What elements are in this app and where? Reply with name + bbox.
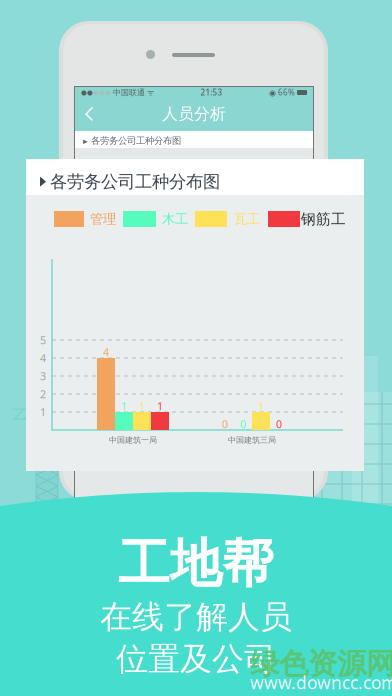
staticText: 中国建筑一局: [109, 435, 157, 445]
staticText: 中国建筑三局: [228, 435, 276, 445]
staticText: 0: [276, 417, 282, 431]
staticText: 1: [258, 399, 264, 413]
staticText: 钢筋工: [301, 210, 346, 228]
staticText: 4: [103, 345, 109, 359]
staticText: 位置及公司: [116, 639, 276, 679]
staticText: 3: [40, 369, 46, 383]
staticText: 0: [240, 417, 246, 431]
staticText: 1: [121, 399, 127, 413]
staticText: ●●: [81, 89, 93, 96]
staticText: 5: [40, 333, 46, 347]
staticText: 4: [40, 351, 46, 365]
staticText: 21:53: [200, 87, 222, 98]
staticText: ▸ 各劳务公司工种分布图: [83, 135, 181, 146]
staticText: 1: [40, 405, 46, 419]
staticText: ᯤ: [147, 87, 154, 98]
staticText: 在线了解人员: [100, 597, 292, 637]
staticText: ◉ 66%: [269, 87, 295, 98]
staticText: 瓦工: [234, 211, 260, 227]
staticText: 绿色资源网: [250, 646, 392, 682]
staticText: 管理: [90, 211, 116, 227]
staticText: 中国联通: [111, 88, 147, 97]
staticText: 工地帮: [118, 532, 274, 596]
staticText: 人员分析: [162, 104, 226, 124]
button[interactable]: Back: [79, 101, 105, 127]
staticText: ●●●: [93, 89, 111, 96]
staticText: 各劳务公司工种分布图: [50, 171, 220, 192]
staticText: 0: [222, 417, 228, 431]
staticText: 1: [139, 399, 145, 413]
staticText: 2: [40, 387, 46, 401]
staticText: 1: [157, 399, 163, 413]
staticText: ▸ 各劳务公司分布图: [87, 431, 202, 447]
staticText: 木工: [162, 211, 188, 227]
staticText: www.downcc.com: [250, 671, 392, 694]
